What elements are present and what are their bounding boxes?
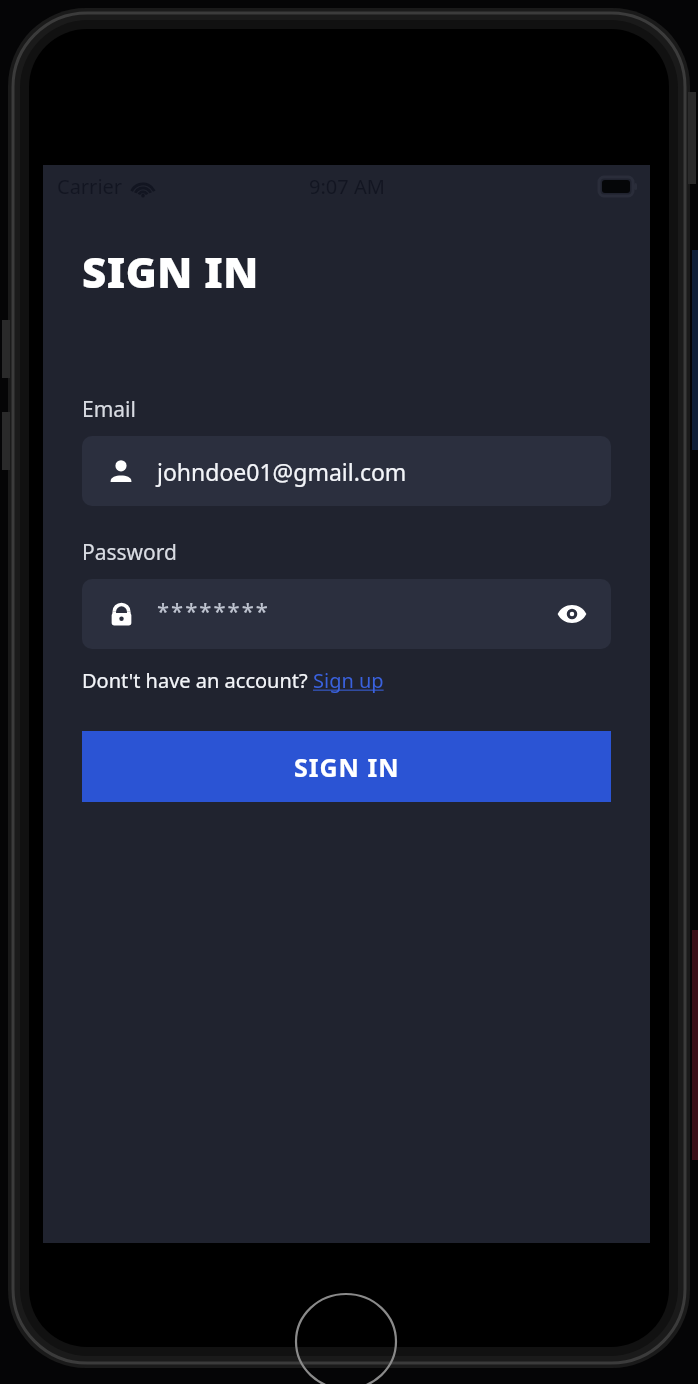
- button[interactable]: Sign up: [313, 667, 384, 694]
- button[interactable]: ********: [82, 579, 611, 649]
- staticText: 9:07 AM: [309, 173, 385, 200]
- button[interactable]: johndoe01@gmail.com: [82, 436, 611, 506]
- staticText: Dont't have an account?: [82, 667, 313, 694]
- staticText: Sign up: [313, 667, 384, 694]
- button[interactable]: Show password: [545, 587, 599, 641]
- staticText: Password: [82, 538, 177, 567]
- button[interactable]: SIGN IN: [82, 731, 611, 802]
- staticText: SIGN IN: [82, 243, 259, 300]
- staticText: johndoe01@gmail.com: [157, 456, 407, 487]
- staticText: Email: [82, 395, 136, 424]
- staticText: Carrier: [57, 173, 123, 200]
- staticText: SIGN IN: [294, 750, 400, 784]
- staticText: ********: [157, 595, 270, 625]
